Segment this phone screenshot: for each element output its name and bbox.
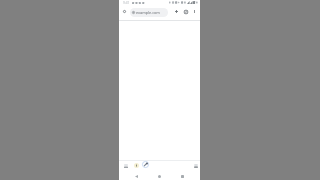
staticText: 9:41	[123, 1, 130, 5]
button[interactable]: Home	[155, 172, 164, 180]
button[interactable]: Switch tabs	[182, 8, 190, 16]
button[interactable]: Home	[121, 8, 128, 15]
button[interactable]: Recent apps	[178, 172, 187, 180]
button[interactable]: New tab	[172, 7, 180, 15]
button[interactable]: example.com	[130, 8, 168, 17]
button[interactable]: Downloads	[122, 162, 129, 169]
staticText: example.com	[136, 10, 160, 15]
button[interactable]: Account	[192, 162, 199, 169]
button[interactable]: Search with Google Lens	[141, 160, 150, 169]
button[interactable]: More options	[190, 7, 198, 15]
button[interactable]: Bookmarks	[133, 162, 140, 169]
button[interactable]: Back	[132, 172, 141, 180]
